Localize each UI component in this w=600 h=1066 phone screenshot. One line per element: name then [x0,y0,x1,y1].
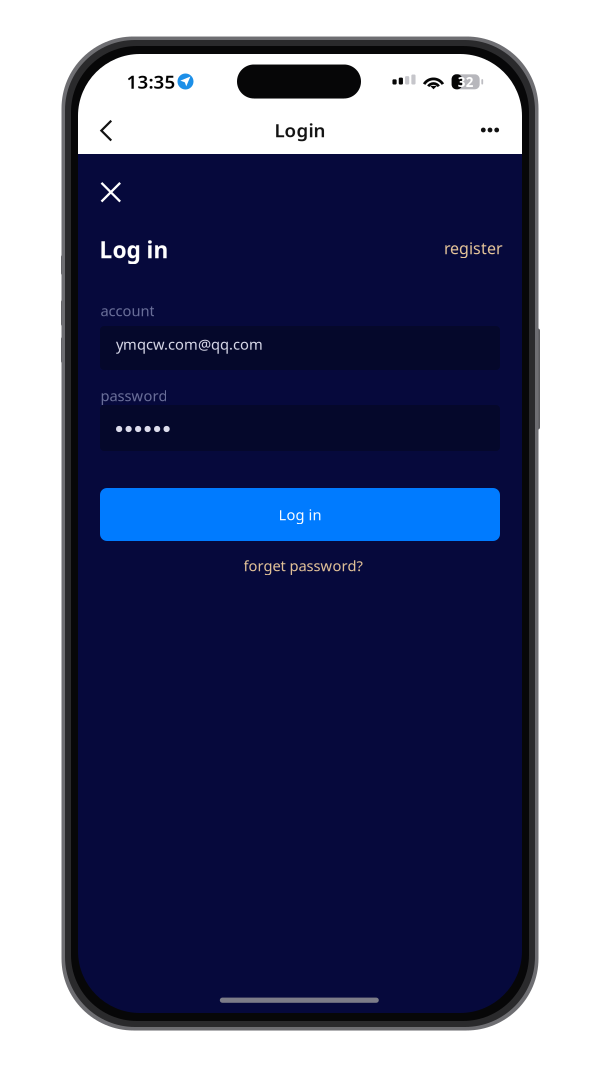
staticText: forget password? [243,556,362,575]
staticText: 13:35 [126,69,175,94]
staticText: ymqcw.com@qq.com [116,334,263,354]
button[interactable]: forget password? [203,550,403,580]
button[interactable]: More options [468,108,512,152]
button[interactable]: register [433,235,503,261]
staticText: password [100,386,167,405]
staticText: register [444,237,503,259]
staticText: account [100,301,154,320]
staticText: Log in [278,505,321,524]
button[interactable]: Back [84,109,128,153]
staticText: Log in [100,234,169,264]
button[interactable]: Close [89,170,133,214]
staticText: 32 [458,73,474,91]
button[interactable]: Log in [100,488,500,541]
staticText: Login [274,118,325,142]
